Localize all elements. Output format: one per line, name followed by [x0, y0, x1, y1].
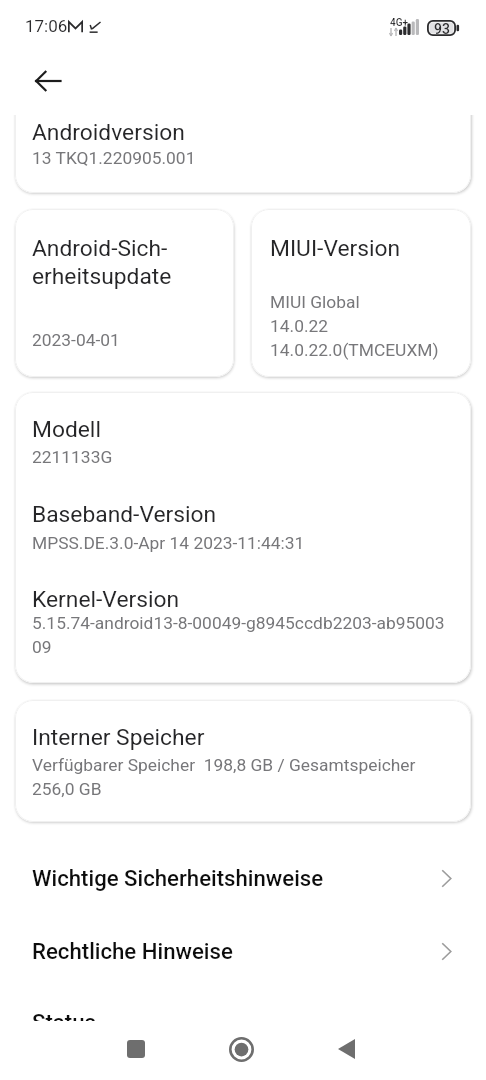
- staticText: 93: [434, 21, 450, 37]
- staticText: Android-Sich- erheitsupdate: [32, 234, 172, 290]
- staticText: Modell: [32, 415, 101, 443]
- staticText: Verfügbarer Speicher 198,8 GB / Gesamtsp…: [32, 752, 416, 800]
- button[interactable]: Rechtliche Hinweise: [0, 925, 486, 977]
- staticText: 2211133G: [32, 444, 113, 468]
- button[interactable]: Back: [31, 64, 65, 98]
- button[interactable]: Modell, Baseband-Version, Kernel-Version: [15, 392, 471, 683]
- staticText: MIUI Global 14.0.22 14.0.22.0(TMCEUXM): [270, 289, 439, 361]
- button[interactable]: Androidversion: [15, 115, 471, 193]
- staticText: MIUI-Version: [270, 234, 401, 262]
- button[interactable]: Android-Sicherheitsupdate: [15, 209, 234, 377]
- staticText: 13 TKQ1.220905.001: [32, 145, 196, 169]
- staticText: 2023-04-01: [32, 327, 120, 351]
- staticText: Baseband-Version: [32, 500, 217, 528]
- staticText: 5.15.74-android13-8-00049-g8945ccdb2203-…: [32, 610, 445, 658]
- staticText: Androidversion: [32, 118, 185, 146]
- button[interactable]: Home: [213, 1021, 269, 1077]
- staticText: MPSS.DE.3.0-Apr 14 2023-11:44:31: [32, 530, 305, 554]
- button[interactable]: Wichtige Sicherheitshinweise: [0, 852, 486, 904]
- button[interactable]: Recents: [108, 1021, 164, 1077]
- button[interactable]: MIUI-Version: [251, 209, 471, 377]
- staticText: 17:06: [25, 16, 68, 36]
- staticText: Rechtliche Hinweise: [32, 938, 233, 964]
- staticText: Kernel-Version: [32, 585, 180, 613]
- staticText: Status: [32, 1009, 96, 1021]
- staticText: 4G+: [390, 17, 409, 29]
- button[interactable]: Interner Speicher: [15, 700, 471, 822]
- staticText: Wichtige Sicherheitshinweise: [32, 865, 324, 891]
- staticText: Interner Speicher: [32, 723, 205, 751]
- button[interactable]: Back: [318, 1021, 374, 1077]
